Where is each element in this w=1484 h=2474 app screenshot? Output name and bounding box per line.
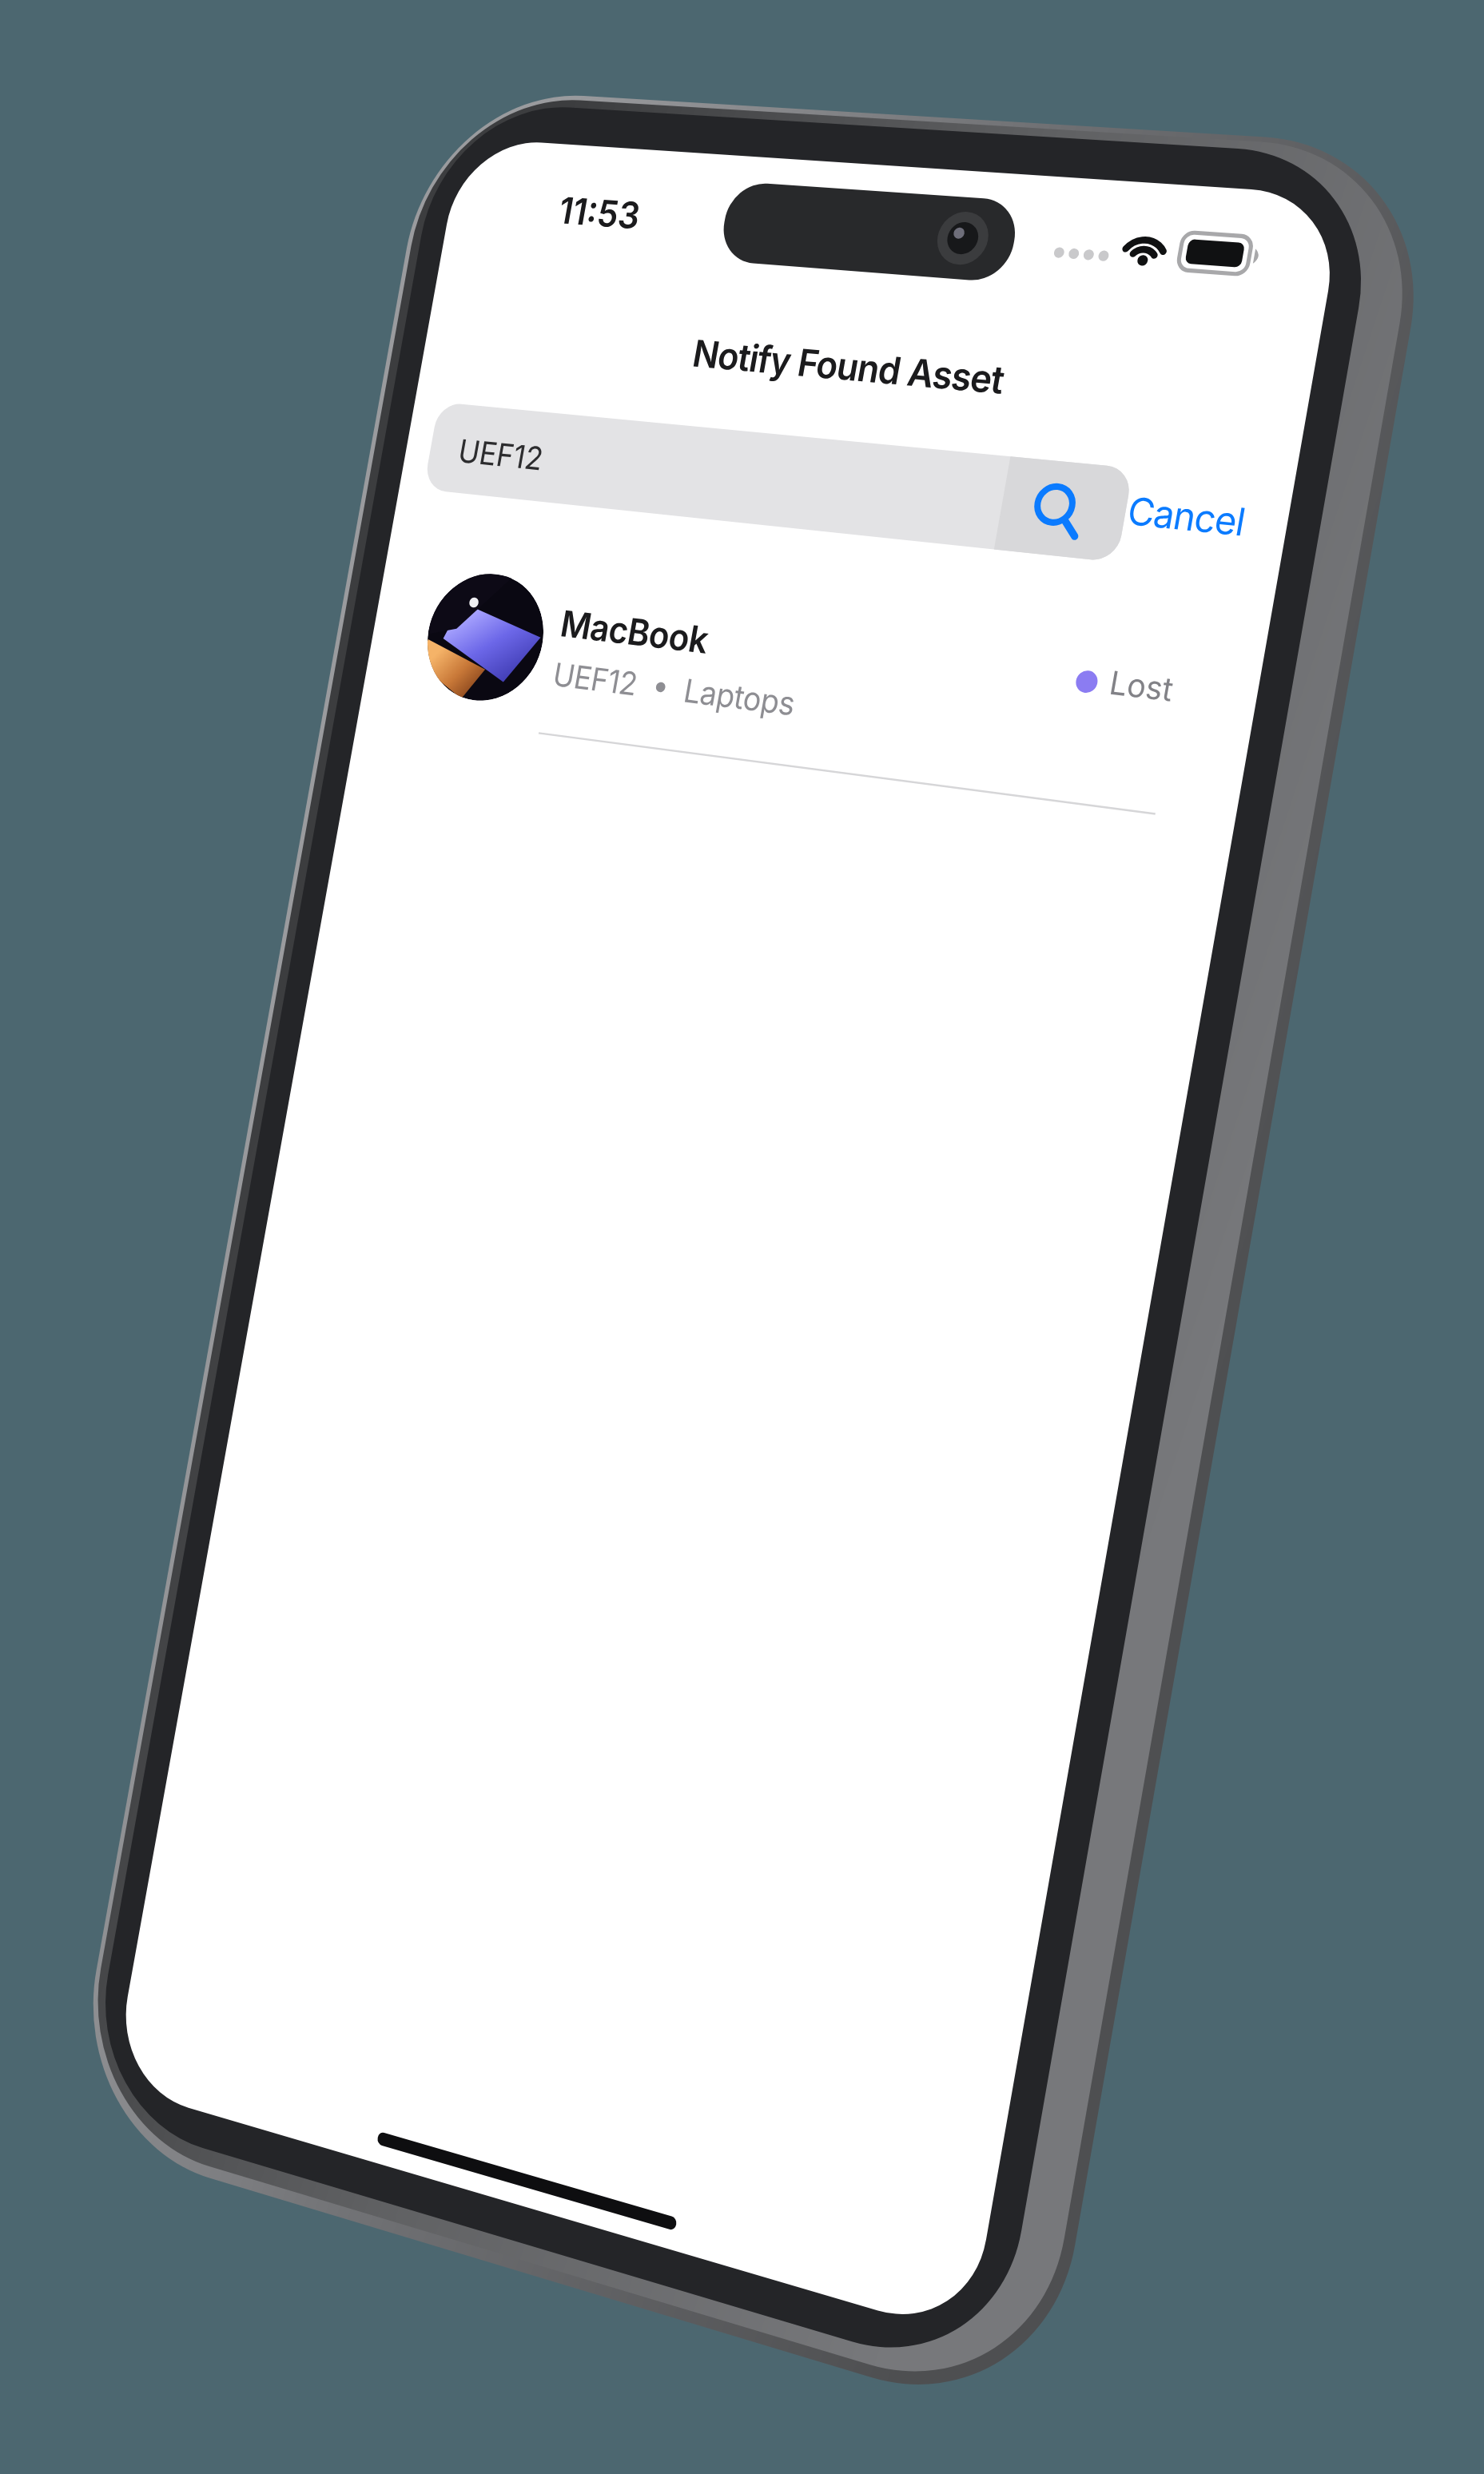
button[interactable] [1119,479,1239,543]
button[interactable] [426,400,1113,559]
button[interactable] [424,575,1183,735]
